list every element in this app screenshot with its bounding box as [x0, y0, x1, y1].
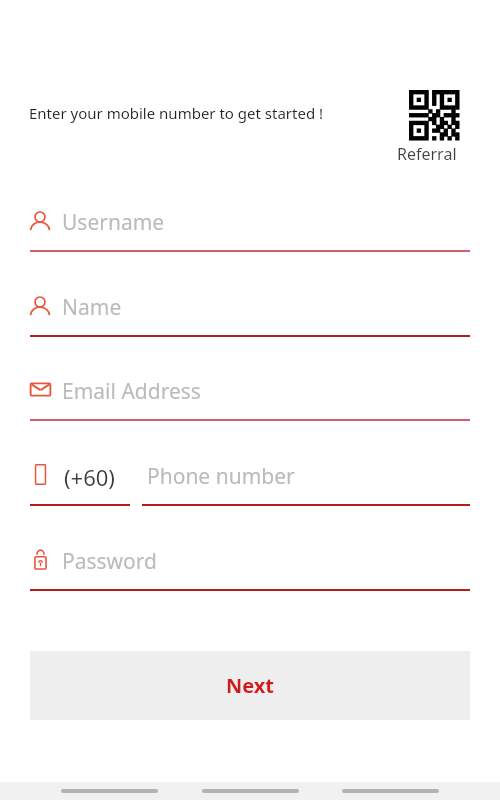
button[interactable]: System navigation	[202, 789, 299, 793]
button[interactable]: System navigation	[61, 789, 158, 793]
staticText: Password	[62, 547, 157, 576]
staticText: Phone number	[147, 462, 295, 491]
button[interactable]: System navigation	[342, 789, 439, 793]
staticText: Name	[62, 293, 122, 322]
staticText: Enter your mobile number to get started …	[29, 103, 324, 123]
button[interactable]: Password field	[30, 547, 470, 591]
button[interactable]: Next	[30, 651, 470, 720]
staticText: Referral	[397, 143, 457, 165]
button[interactable]: Referral QR code	[395, 88, 463, 164]
staticText: Username	[62, 208, 165, 237]
staticText: Next	[226, 672, 275, 699]
staticText: (+60)	[64, 462, 115, 492]
button[interactable]: Name field	[30, 293, 470, 337]
button[interactable]: Phone number field	[142, 462, 470, 506]
staticText: Email Address	[62, 377, 201, 406]
button[interactable]: Username field	[30, 208, 470, 252]
button[interactable]: Country code	[30, 462, 130, 506]
button[interactable]: Email Address field	[30, 377, 470, 421]
